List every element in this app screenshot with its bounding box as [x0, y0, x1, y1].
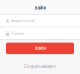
staticText: Введите email	[11, 19, 35, 23]
staticText: Пароль	[11, 31, 24, 35]
staticText: Создать аккаунт	[23, 64, 56, 69]
staticText: Войти	[34, 46, 45, 51]
button[interactable]: Войти	[6, 43, 74, 54]
button[interactable]: Создать аккаунт	[23, 64, 56, 69]
button[interactable]: Введите email	[0, 15, 80, 27]
staticText: Войти	[34, 6, 45, 10]
button[interactable]: Пароль	[0, 27, 80, 39]
